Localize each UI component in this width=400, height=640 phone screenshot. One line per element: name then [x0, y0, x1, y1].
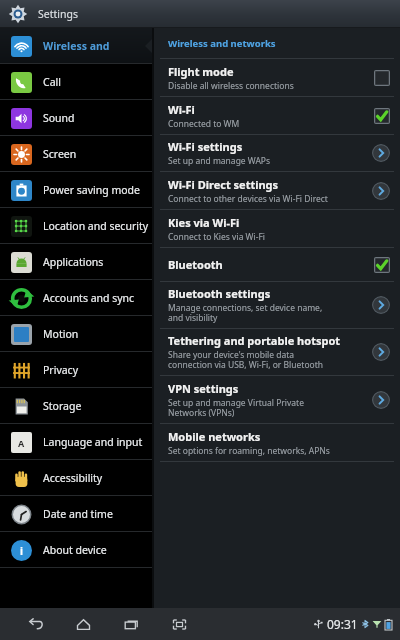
button[interactable]: Open settings — [372, 343, 390, 361]
button[interactable]: VPN settings — [154, 376, 400, 423]
staticText: Date and time — [43, 507, 113, 521]
button[interactable]: Kies via Wi-Fi — [154, 210, 400, 247]
staticText: Share your device's mobile data connecti… — [168, 349, 323, 371]
button[interactable]: Sound — [0, 100, 152, 136]
staticText: Connect to Kies via Wi-Fi — [168, 231, 266, 243]
button[interactable]: Applications — [0, 244, 152, 280]
staticText: Settings — [38, 7, 78, 21]
button[interactable]: Unchecked — [374, 70, 390, 86]
button[interactable]: Screenshot — [166, 611, 192, 637]
button[interactable]: Recents — [118, 611, 144, 637]
button[interactable]: A — [0, 424, 152, 460]
button[interactable]: Flight mode — [154, 59, 400, 96]
button[interactable]: Open settings — [372, 182, 390, 200]
button[interactable]: Accounts and sync — [0, 280, 152, 316]
button[interactable]: Power saving mode — [0, 172, 152, 208]
staticText: Set up and manage WAPs — [168, 155, 271, 167]
staticText: Kies via Wi-Fi — [168, 215, 240, 230]
button[interactable]: Checked — [374, 257, 390, 273]
staticText: Privacy — [43, 363, 79, 377]
button[interactable]: Open settings — [372, 144, 390, 162]
button[interactable]: Checked — [374, 108, 390, 124]
staticText: Connect to other devices via Wi-Fi Direc… — [168, 193, 328, 205]
staticText: Language and input — [43, 435, 143, 449]
staticText: Connected to WM — [168, 118, 240, 130]
button[interactable]: Home — [70, 611, 96, 637]
button[interactable]: Tethering and portable hotspot — [154, 329, 400, 375]
staticText: Flight mode — [168, 64, 234, 79]
staticText: Set up and manage Virtual Private Networ… — [168, 397, 304, 419]
button[interactable]: Wi-Fi Direct settings — [154, 172, 400, 209]
staticText: Storage — [43, 399, 82, 413]
staticText: Screen — [43, 147, 77, 161]
button[interactable]: Date and time — [0, 496, 152, 532]
button[interactable]: Motion — [0, 316, 152, 352]
staticText: Accounts and sync — [43, 291, 135, 305]
button[interactable]: Accessibility — [0, 460, 152, 496]
staticText: Accessibility — [43, 471, 103, 485]
staticText: Wireless and networks — [168, 37, 276, 50]
staticText: Call — [43, 75, 61, 89]
staticText: i — [20, 544, 23, 558]
staticText: Sound — [43, 111, 75, 125]
button[interactable]: Screen — [0, 136, 152, 172]
staticText: Wi-Fi Direct settings — [168, 177, 279, 192]
staticText: Bluetooth settings — [168, 286, 271, 301]
staticText: Power saving mode — [43, 183, 140, 197]
staticText: Tethering and portable hotspot — [168, 333, 341, 348]
staticText: 09:31 — [327, 616, 358, 632]
button[interactable]: Back — [22, 611, 48, 637]
button[interactable]: Open settings — [372, 391, 390, 409]
staticText: Applications — [43, 255, 104, 269]
staticText: Disable all wireless connections — [168, 80, 294, 92]
staticText: Wireless and networks — [43, 39, 152, 53]
staticText: About device — [43, 543, 107, 557]
staticText: Manage connections, set device name, and… — [168, 302, 323, 324]
button[interactable]: Mobile networks — [154, 424, 400, 461]
staticText: Bluetooth — [168, 257, 223, 272]
button[interactable]: i — [0, 532, 152, 568]
button[interactable]: Bluetooth settings — [154, 282, 400, 328]
staticText: Location and security — [43, 219, 149, 233]
button[interactable]: Wi-Fi settings — [154, 135, 400, 171]
staticText: VPN settings — [168, 381, 239, 396]
button[interactable]: Call — [0, 64, 152, 100]
staticText: Wi-Fi — [168, 102, 195, 117]
button[interactable]: Bluetooth — [154, 248, 400, 281]
button[interactable]: Wi-Fi — [154, 97, 400, 134]
button[interactable]: Privacy — [0, 352, 152, 388]
staticText: Set options for roaming, networks, APNs — [168, 445, 330, 457]
button[interactable]: Open settings — [372, 296, 390, 314]
staticText: A — [18, 437, 25, 449]
staticText: Wi-Fi settings — [168, 139, 243, 154]
staticText: Motion — [43, 327, 79, 341]
staticText: Mobile networks — [168, 429, 261, 444]
button[interactable]: Wireless and networks — [0, 28, 152, 64]
button[interactable]: Location and security — [0, 208, 152, 244]
button[interactable]: Storage — [0, 388, 152, 424]
